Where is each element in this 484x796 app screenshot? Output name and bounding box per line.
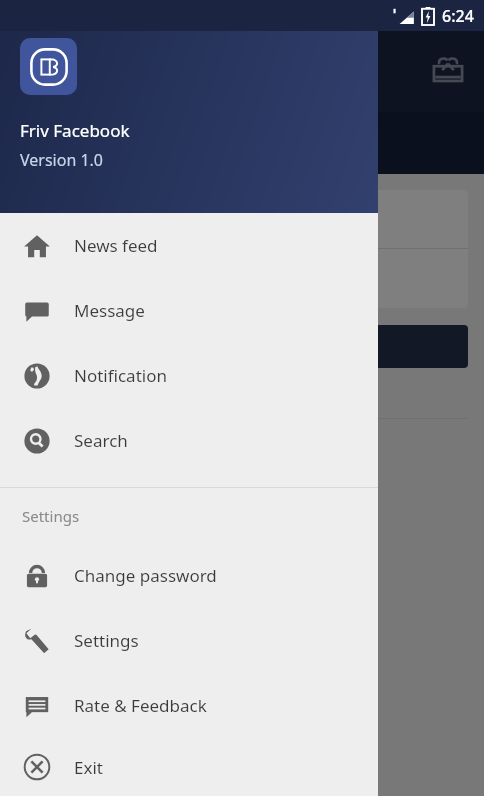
button[interactable]: Notification <box>0 343 378 408</box>
button[interactable]: Exit <box>0 738 378 796</box>
button[interactable]: News feed <box>0 213 378 278</box>
button[interactable]: Change password <box>0 543 378 608</box>
button[interactable]: Search <box>0 408 378 473</box>
button[interactable]: Settings <box>0 608 378 673</box>
staticText: 6:24 <box>442 5 474 27</box>
staticText: Settings <box>22 506 80 526</box>
button[interactable]: Message <box>0 278 378 343</box>
staticText: Version 1.0 <box>20 149 104 171</box>
staticText: Settings <box>74 629 139 652</box>
button[interactable] <box>16 325 468 368</box>
staticText: Exit <box>74 756 103 779</box>
staticText: Change password <box>74 564 217 587</box>
button[interactable]: Rate & Feedback <box>0 673 378 738</box>
staticText: Rate & Feedback <box>74 694 207 717</box>
staticText: Search <box>74 429 128 452</box>
staticText: Friv Facebook <box>20 119 130 142</box>
button[interactable]: Gift <box>424 48 472 96</box>
staticText: Notification <box>74 364 167 387</box>
staticText: Message <box>74 299 145 322</box>
staticText: News feed <box>74 234 158 257</box>
